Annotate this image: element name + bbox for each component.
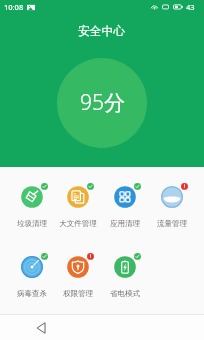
staticText: 应用清理	[110, 219, 140, 228]
button[interactable]: 流量管理	[148, 180, 195, 228]
staticText: 10:08	[4, 2, 24, 12]
staticText: 安全中心	[78, 24, 126, 39]
staticText: 95分	[80, 88, 125, 117]
staticText: 省电模式	[110, 289, 140, 298]
button[interactable]: 权限管理	[55, 250, 101, 298]
button[interactable]: 大文件管理	[55, 180, 101, 228]
button[interactable]: 垃圾清理	[9, 180, 55, 228]
staticText: 43	[186, 2, 195, 12]
button[interactable]: 省电模式	[101, 250, 148, 298]
button[interactable]: Back	[29, 315, 54, 340]
button[interactable]: 病毒查杀	[9, 250, 55, 298]
staticText: 大文件管理	[59, 219, 97, 228]
staticText: 流量管理	[157, 219, 187, 228]
staticText: 垃圾清理	[17, 219, 47, 228]
button[interactable]: 应用清理	[101, 180, 148, 228]
staticText: 权限管理	[63, 289, 93, 298]
staticText: 病毒查杀	[17, 289, 47, 298]
